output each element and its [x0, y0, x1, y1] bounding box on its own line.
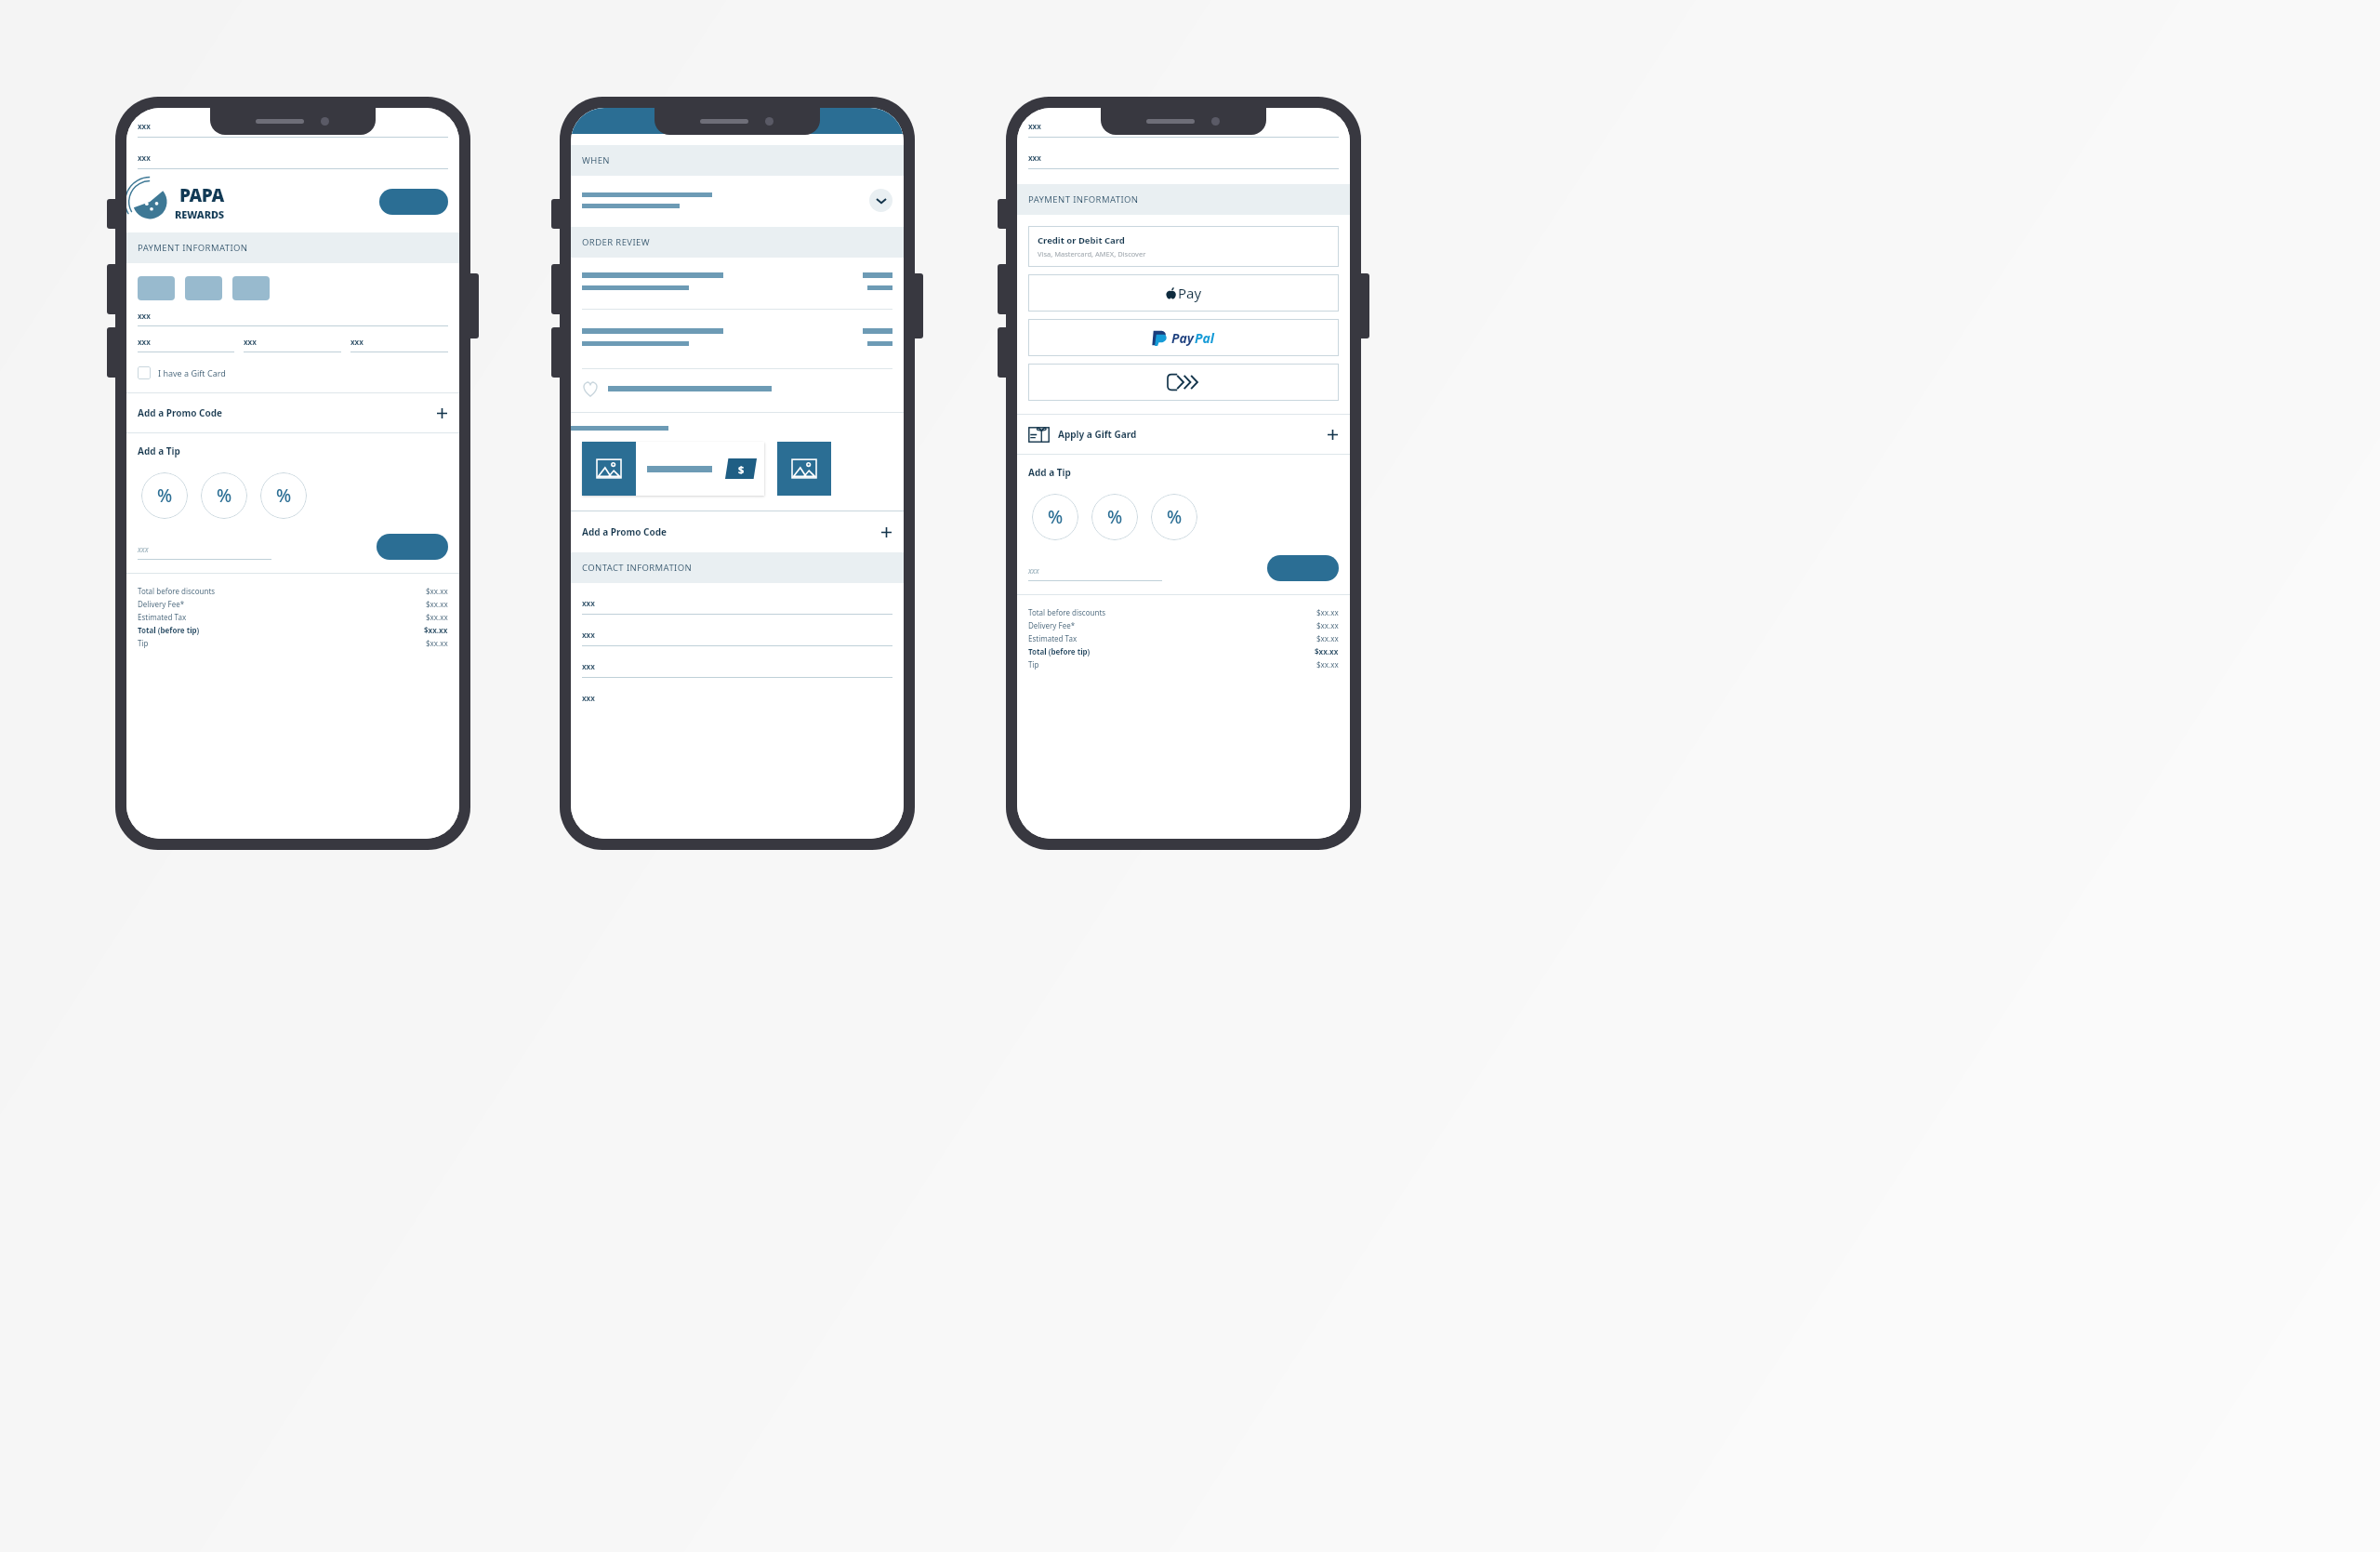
staticText: Add a Tip	[1028, 466, 1071, 479]
button[interactable]: PayPal	[1028, 319, 1339, 356]
staticText: xxx	[582, 598, 595, 608]
staticText: $xx.xx	[1315, 646, 1339, 657]
button[interactable]: %	[1151, 494, 1197, 540]
staticText: xxx	[582, 630, 595, 640]
button[interactable]: Apply tip	[377, 534, 448, 560]
button[interactable]: %	[1032, 494, 1078, 540]
staticText: xxx	[138, 153, 151, 163]
staticText: %	[1048, 505, 1064, 529]
staticText: Total (before tip)	[138, 625, 200, 635]
staticText: CONTACT INFORMATION	[582, 562, 693, 574]
staticText: %	[217, 484, 232, 508]
staticText: Visa, Mastercard, AMEX, Discover	[1038, 249, 1146, 259]
staticText: xxx	[1028, 121, 1041, 131]
staticText: $xx.xx	[1316, 633, 1339, 643]
staticText: Total before discounts	[1028, 607, 1106, 617]
staticText: $xx.xx	[426, 599, 448, 609]
staticText: $xx.xx	[426, 586, 448, 596]
button[interactable]: %	[141, 472, 188, 519]
staticText: Apply a Gift Gard	[1058, 428, 1137, 441]
staticText: Pay	[1178, 284, 1202, 302]
button[interactable]: %	[201, 472, 247, 519]
button[interactable]: Join Papa Rewards	[379, 189, 448, 215]
button[interactable]: I have a Gift Card	[138, 366, 448, 379]
button[interactable]: Add a Promo Code	[126, 393, 459, 432]
button[interactable]: Expand	[869, 189, 892, 212]
staticText: Tip	[1028, 659, 1039, 670]
staticText: Pal	[1195, 329, 1215, 347]
staticText: Add a Promo Code	[138, 406, 223, 419]
staticText: Total before discounts	[138, 586, 216, 596]
button[interactable]: Item image	[777, 442, 831, 496]
button[interactable]: %	[1091, 494, 1138, 540]
staticText: $xx.xx	[1316, 659, 1339, 670]
staticText: xxx	[138, 337, 151, 347]
staticText: $	[738, 462, 745, 476]
staticText: xxx	[582, 693, 595, 703]
staticText: Estimated Tax	[138, 612, 187, 622]
button[interactable]: Card type	[138, 276, 175, 300]
button[interactable]: Card type	[232, 276, 270, 300]
staticText: $xx.xx	[1316, 607, 1339, 617]
staticText: Delivery Fee*	[1028, 620, 1076, 630]
staticText: Add a Promo Code	[582, 525, 668, 538]
staticText: PAYMENT INFORMATION	[1028, 193, 1139, 206]
button[interactable]: Other payment	[1028, 364, 1339, 401]
staticText: Add a Tip	[138, 444, 180, 458]
button[interactable]: Card type	[185, 276, 222, 300]
staticText: xxx	[138, 544, 149, 554]
button[interactable]: Apply a Gift Gard	[1017, 415, 1350, 454]
button[interactable]: %	[260, 472, 307, 519]
button[interactable]: Apple Pay	[1028, 274, 1339, 312]
staticText: $xx.xx	[1316, 620, 1339, 630]
staticText: xxx	[350, 337, 364, 347]
staticText: xxx	[138, 311, 151, 321]
staticText: %	[1107, 505, 1123, 529]
staticText: $xx.xx	[426, 638, 448, 648]
staticText: PAPA	[179, 183, 224, 207]
staticText: xxx	[244, 337, 257, 347]
staticText: Pay	[1171, 329, 1195, 347]
staticText: %	[1167, 505, 1183, 529]
button[interactable]: Add a Promo Code	[571, 511, 904, 552]
staticText: xxx	[138, 121, 151, 131]
staticText: Tip	[138, 638, 149, 648]
staticText: %	[276, 484, 292, 508]
staticText: %	[157, 484, 173, 508]
staticText: Estimated Tax	[1028, 633, 1078, 643]
staticText: Delivery Fee*	[138, 599, 185, 609]
staticText: $xx.xx	[426, 612, 448, 622]
staticText: Total (before tip)	[1028, 646, 1091, 657]
button[interactable]: Credit or Debit Card	[1028, 226, 1339, 267]
staticText: xxx	[1028, 153, 1041, 163]
staticText: $xx.xx	[424, 625, 448, 635]
staticText: xxx	[1028, 565, 1039, 576]
button[interactable]: Apply tip	[1267, 555, 1339, 581]
staticText: Credit or Debit Card	[1038, 234, 1125, 246]
staticText: xxx	[582, 661, 595, 671]
staticText: I have a Gift Card	[158, 367, 226, 378]
staticText: ORDER REVIEW	[582, 236, 650, 248]
staticText: PAYMENT INFORMATION	[138, 242, 248, 254]
staticText: WHEN	[582, 154, 610, 166]
staticText: REWARDS	[175, 207, 224, 220]
button[interactable]: $	[582, 442, 764, 496]
